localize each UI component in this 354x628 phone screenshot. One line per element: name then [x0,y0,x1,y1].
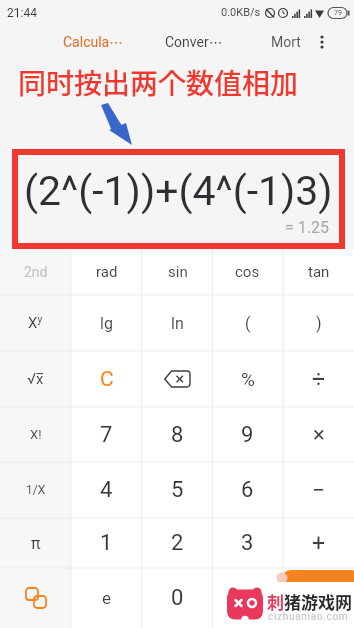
button[interactable] [281,570,354,628]
button[interactable]: lg [71,295,142,351]
button[interactable]: Xy [0,295,71,351]
staticText: × [313,422,325,448]
staticText: 1 [100,530,113,556]
staticText: Xy [28,314,43,332]
staticText: 0.0KB/s [221,6,261,19]
button[interactable]: ( [212,295,283,351]
button[interactable]: 5 [142,462,213,518]
staticText: 0 [171,585,184,611]
staticText: 1/X [26,483,46,497]
staticText: 6 [241,477,254,503]
button[interactable]: cos [212,249,283,295]
button[interactable]: × [283,407,354,462]
button[interactable]: % [212,351,283,407]
staticText: ( [245,314,251,333]
staticText: ) [316,314,322,333]
button[interactable]: sin [142,249,213,295]
staticText: 2nd [24,264,48,280]
staticText: √x̅ [27,370,44,388]
staticText: cos [235,263,260,281]
staticText: 刺猪游戏网 [267,589,352,614]
button[interactable]: C [71,351,142,407]
staticText: 5 [171,477,184,503]
button[interactable]: 8 [142,407,213,462]
button[interactable]: 1 [71,518,142,568]
button[interactable]: 2 [142,518,213,568]
button[interactable]: π [0,518,71,568]
staticText: + [312,530,326,557]
staticText: = 1.25 [285,218,329,237]
staticText: ln [171,314,184,333]
staticText: sin [168,263,188,281]
button[interactable]: X! [0,407,71,462]
staticText: Mort [271,34,301,50]
staticText: cizhuaniao.com [268,611,349,623]
button[interactable]: 6 [212,462,283,518]
button[interactable] [312,25,332,58]
button[interactable]: 2nd [0,249,71,295]
button[interactable]: ln [142,295,213,351]
staticText: X! [30,427,42,442]
staticText: π [31,534,41,553]
staticText: lg [100,314,113,333]
button[interactable]: √x̅ [0,351,71,407]
button[interactable]: 3 [212,518,283,568]
staticText: C [100,367,114,392]
staticText: rad [96,263,118,281]
button[interactable]: ) [283,295,354,351]
staticText: 9 [241,422,254,448]
button[interactable]: 1/X [0,462,71,518]
button[interactable]: 7 [71,407,142,462]
staticText: Conver⋯ [165,34,223,50]
staticText: ÷ [312,366,326,393]
button[interactable]: 4 [71,462,142,518]
button[interactable] [142,351,213,407]
staticText: 7 [100,422,113,448]
staticText: 4 [100,477,113,503]
button[interactable]: − [283,462,354,518]
staticText: tan [308,263,330,281]
staticText: 21:44 [7,6,37,20]
staticText: − [312,477,326,504]
button[interactable]: e [71,568,142,628]
button[interactable]: + [283,518,354,568]
button[interactable]: 9 [212,407,283,462]
staticText: Calcula⋯ [63,34,124,50]
staticText: % [241,368,255,390]
staticText: 3 [241,530,254,556]
staticText: 2 [171,530,184,556]
staticText: (2^(-1))+(4^(-1)3) [24,167,333,215]
button[interactable] [0,568,71,628]
staticText: e [102,588,112,608]
button[interactable]: Conver⋯ [165,25,223,58]
button[interactable]: Mort [271,25,301,58]
button[interactable]: ÷ [283,351,354,407]
staticText: 79 [334,9,342,17]
button[interactable]: rad [71,249,142,295]
button[interactable]: Calcula⋯ [63,25,124,58]
button[interactable]: tan [283,249,354,295]
button[interactable]: 0 [142,568,213,628]
staticText: 同时按出两个数值相加 [18,62,299,103]
staticText: 8 [171,422,184,448]
